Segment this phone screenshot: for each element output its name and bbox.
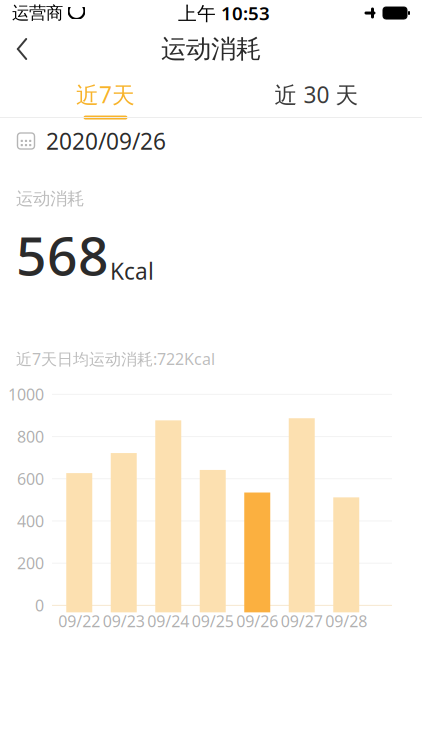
staticText: 400 — [17, 510, 44, 531]
staticText: 1000 — [8, 384, 44, 405]
staticText: 200 — [17, 552, 44, 574]
staticText: Kcal — [110, 256, 154, 286]
staticText: 运动消耗 — [16, 188, 84, 209]
staticText: 09/26 — [236, 610, 278, 632]
staticText: 09/23 — [103, 610, 145, 632]
button[interactable]: 近 30 天 — [211, 69, 422, 119]
staticText: 运动消耗 — [161, 33, 261, 64]
staticText: 800 — [17, 426, 44, 447]
staticText: 09/27 — [281, 610, 323, 632]
staticText: 近7天日均运动消耗:722Kcal — [16, 348, 215, 369]
staticText: 09/22 — [58, 610, 100, 632]
staticText: 09/28 — [325, 610, 367, 632]
staticText: 568 — [16, 219, 109, 290]
staticText: 09/25 — [192, 610, 234, 632]
staticText: 近7天 — [76, 79, 135, 109]
staticText: 600 — [17, 468, 44, 489]
staticText: 上午 10:53 — [178, 1, 270, 25]
button[interactable]: 2020/09/26 — [0, 118, 422, 164]
staticText: 近 30 天 — [274, 79, 358, 109]
button[interactable]: 近7天 — [0, 69, 211, 119]
staticText: 2020/09/26 — [46, 126, 166, 156]
staticText: 09/24 — [147, 610, 189, 632]
staticText: 运营商 — [12, 2, 63, 24]
button[interactable]: 返回 — [0, 27, 44, 71]
staticText: 0 — [35, 595, 44, 616]
